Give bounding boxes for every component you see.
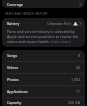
staticText: Capacity [7, 100, 22, 105]
staticText: 256 GB [68, 100, 81, 105]
staticText: 71 [76, 89, 81, 94]
staticText: Unknown Part [47, 21, 72, 26]
button[interactable]: Applications [2, 86, 85, 97]
staticText: Songs [7, 53, 18, 58]
staticText: Videos [7, 65, 19, 70]
button[interactable]: Songs [2, 50, 85, 61]
staticText: Battery [7, 21, 20, 26]
button[interactable]: Battery [2, 18, 85, 29]
staticText: PARTS AND SERVICE HISTORY [5, 12, 48, 16]
button[interactable]: Photos [2, 74, 85, 85]
staticText: 1,602 [71, 77, 81, 82]
button[interactable]: Videos [2, 62, 85, 73]
staticText: 8 [78, 53, 81, 58]
staticText: Photos [7, 77, 19, 82]
staticText: Coverage [7, 2, 23, 7]
button[interactable]: Capacity [2, 98, 85, 106]
button[interactable]: Coverage [2, 0, 85, 8]
staticText: Applications [7, 89, 28, 94]
staticText: 40 [76, 65, 81, 70]
staticText: Parts and service history is collected b… [7, 29, 81, 44]
